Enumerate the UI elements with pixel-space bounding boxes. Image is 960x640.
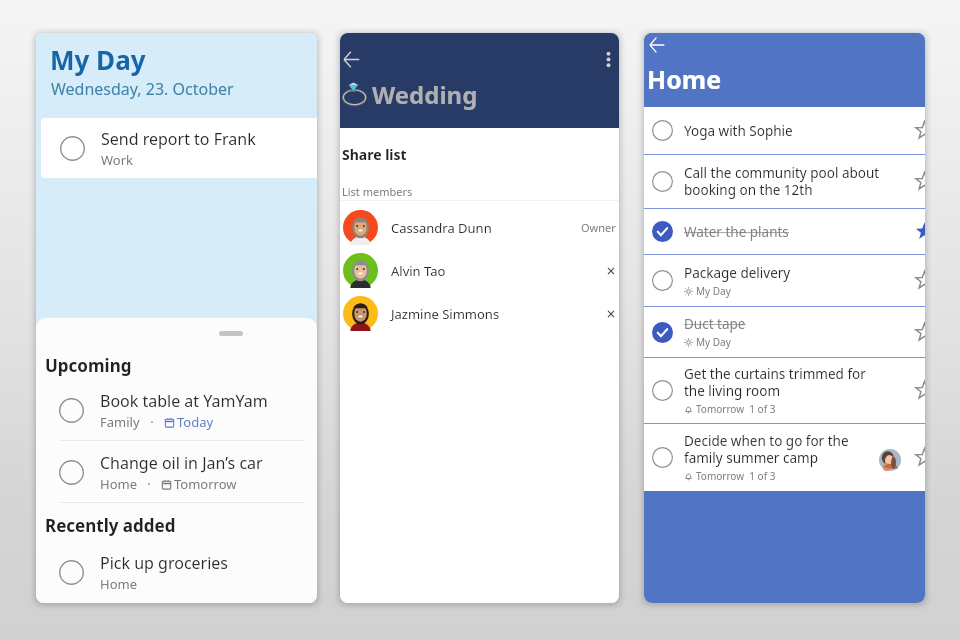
- button[interactable]: Yoga with Sophie: [644, 107, 925, 154]
- button[interactable]: Back: [343, 51, 360, 68]
- staticText: Family: [100, 413, 140, 431]
- staticText: Wednesday, 23. October: [51, 78, 234, 100]
- button[interactable]: Call the community pool about booking on…: [644, 155, 925, 208]
- button[interactable]: Remove member: [607, 310, 615, 318]
- button[interactable]: Pick up groceries: [36, 544, 317, 601]
- staticText: Today: [177, 413, 214, 431]
- staticText: Package delivery: [684, 264, 791, 282]
- staticText: Cassandra Dunn: [391, 219, 492, 237]
- staticText: Change oil in Jan’s car: [100, 452, 263, 474]
- staticText: My Day: [696, 284, 731, 298]
- button[interactable]: Cassandra Dunn: [340, 206, 619, 249]
- staticText: Decide when to go for the family summer …: [684, 432, 849, 467]
- button[interactable]: Book table at YamYam: [36, 382, 317, 439]
- staticText: Tomorrow 1 of 3: [696, 469, 776, 483]
- staticText: Upcoming: [45, 354, 132, 377]
- button[interactable]: Star task: [915, 448, 925, 467]
- button[interactable]: Star task: [915, 381, 925, 400]
- staticText: Duct tape: [684, 315, 746, 333]
- staticText: Book table at YamYam: [100, 390, 268, 412]
- staticText: Home: [100, 475, 137, 493]
- staticText: Owner: [581, 220, 616, 235]
- staticText: List members: [342, 184, 413, 199]
- button[interactable]: Star task: [915, 121, 925, 140]
- button[interactable]: Water the plants: [644, 209, 925, 254]
- button[interactable]: Package delivery: [644, 255, 925, 306]
- button[interactable]: Jazmine Simmons: [340, 292, 619, 335]
- staticText: Home: [100, 575, 137, 593]
- staticText: Tomorrow 1 of 3: [696, 402, 776, 416]
- staticText: ·: [137, 475, 161, 493]
- button[interactable]: Star task: [915, 271, 925, 290]
- button[interactable]: Unstar task: [915, 222, 925, 241]
- button[interactable]: Back: [649, 37, 665, 53]
- staticText: Home: [647, 62, 722, 96]
- staticText: My Day: [50, 42, 146, 77]
- staticText: Jazmine Simmons: [391, 305, 500, 323]
- button[interactable]: Star task: [915, 323, 925, 342]
- staticText: Send report to Frank: [101, 128, 256, 150]
- button[interactable]: Send report to Frank: [41, 118, 317, 178]
- button[interactable]: Decide when to go for the family summer …: [644, 424, 925, 491]
- button[interactable]: Remove member: [607, 267, 615, 275]
- staticText: ·: [140, 413, 164, 431]
- button[interactable]: Star task: [915, 172, 925, 191]
- button[interactable]: Duct tape: [644, 307, 925, 357]
- staticText: My Day: [696, 335, 731, 349]
- staticText: Call the community pool about booking on…: [684, 164, 880, 199]
- button[interactable]: Alvin Tao: [340, 249, 619, 292]
- staticText: Share list: [342, 145, 407, 164]
- staticText: Pick up groceries: [100, 552, 229, 574]
- button[interactable]: Change oil in Jan’s car: [36, 444, 317, 501]
- staticText: Alvin Tao: [391, 262, 446, 280]
- button[interactable]: Get the curtains trimmed for the living …: [644, 358, 925, 423]
- staticText: Recently added: [45, 514, 176, 537]
- button[interactable]: More options: [601, 52, 616, 67]
- staticText: Tomorrow: [174, 475, 237, 493]
- staticText: Wedding: [372, 78, 478, 111]
- staticText: Yoga with Sophie: [684, 122, 793, 140]
- staticText: Work: [101, 151, 134, 169]
- staticText: Get the curtains trimmed for the living …: [684, 365, 866, 400]
- staticText: Water the plants: [684, 223, 789, 241]
